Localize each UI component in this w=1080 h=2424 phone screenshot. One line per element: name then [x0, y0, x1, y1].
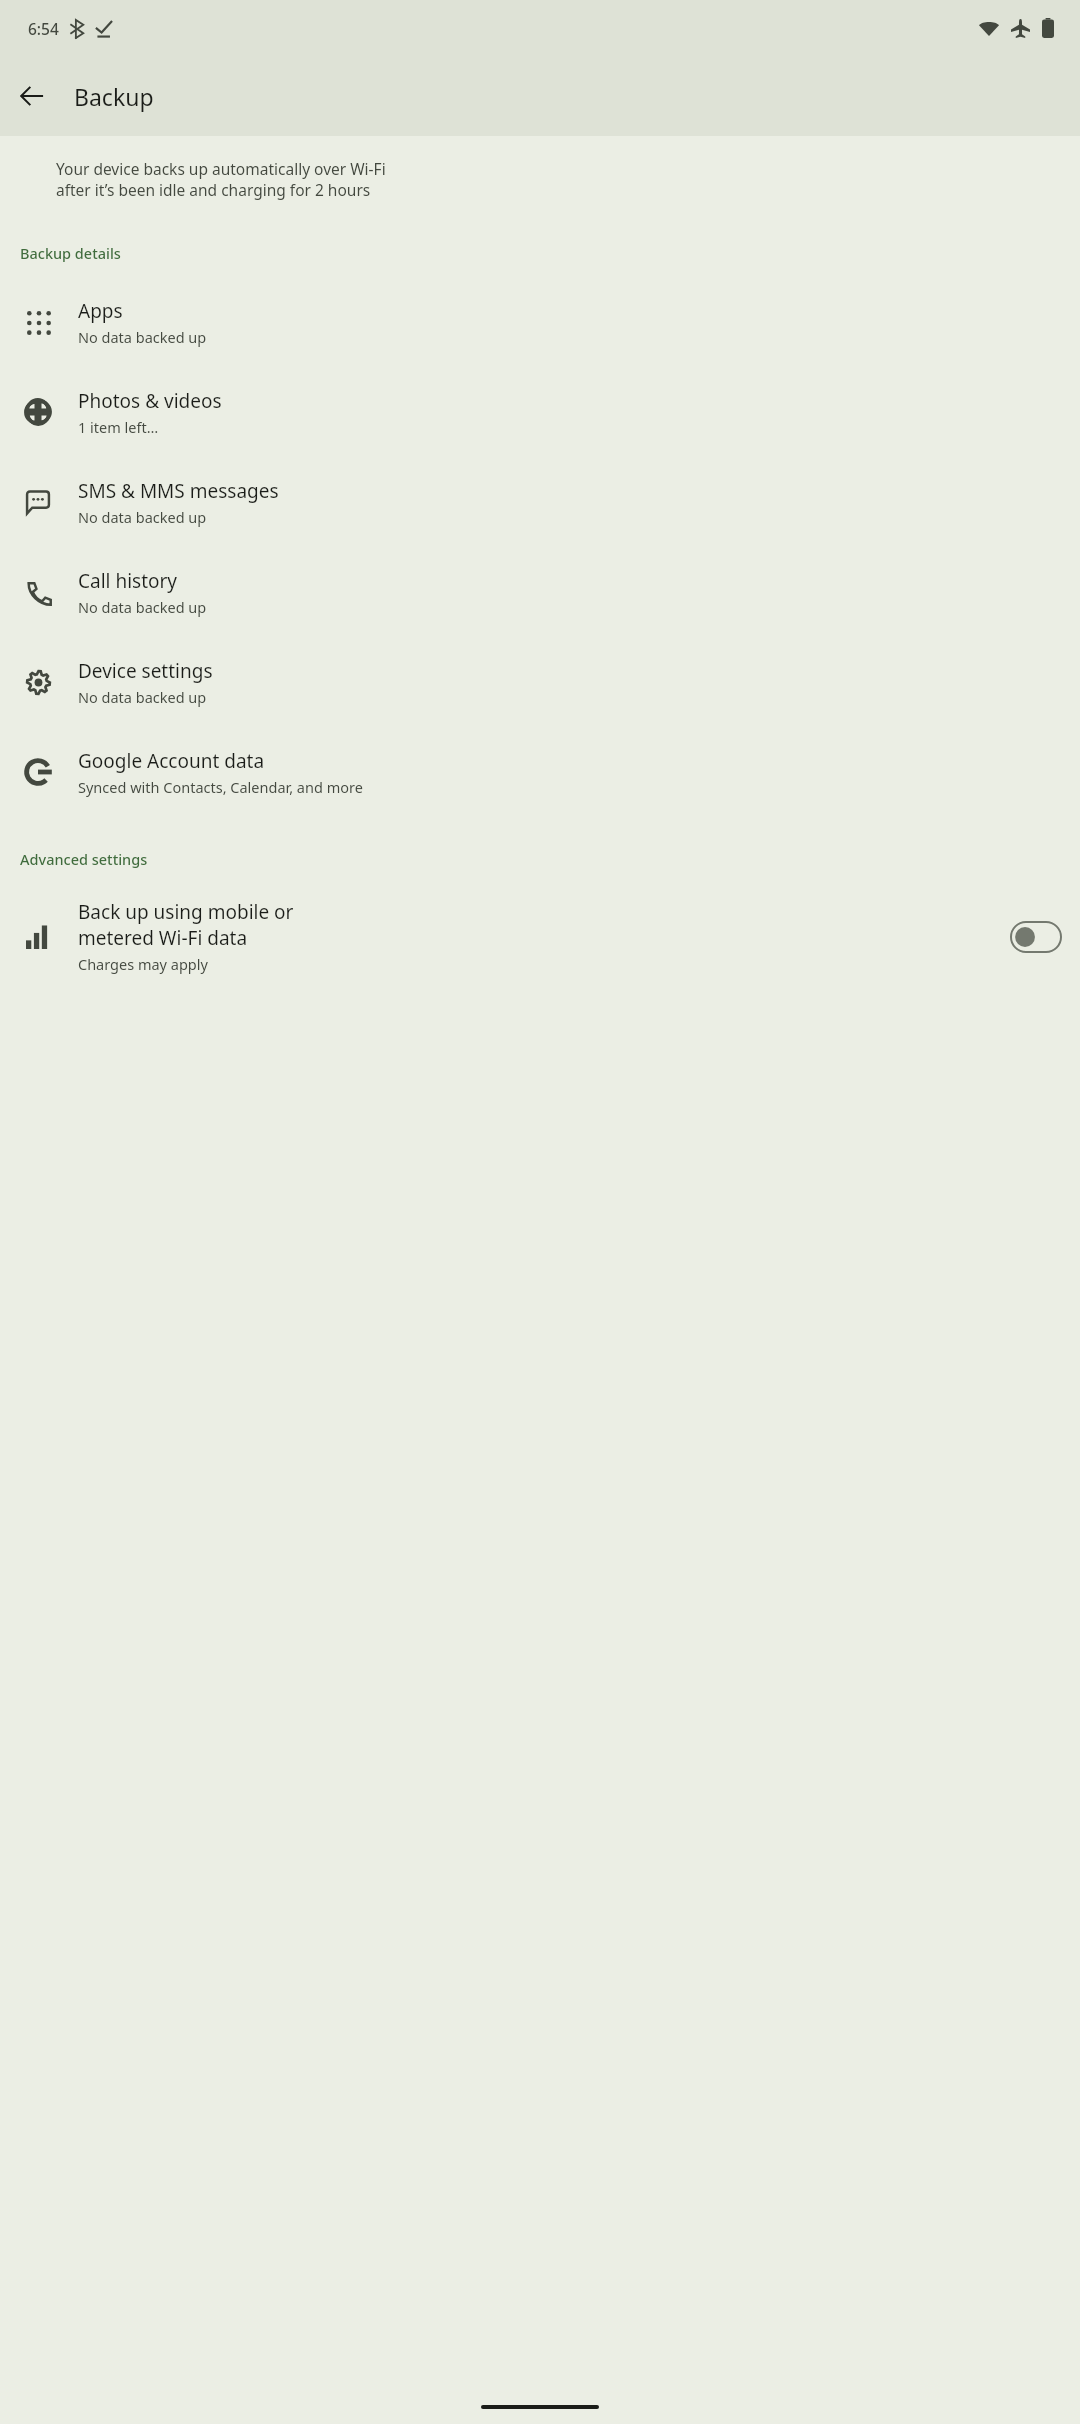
button[interactable]: Google Account data	[0, 727, 1080, 817]
staticText: Google Account data	[78, 748, 265, 774]
button[interactable]: Back up using mobile or metered Wi-Fi da…	[0, 885, 1080, 988]
button[interactable]: Call history	[0, 547, 1080, 637]
staticText: Backup	[74, 81, 154, 112]
button[interactable]: SMS & MMS messages	[0, 457, 1080, 547]
staticText: No data backed up	[78, 327, 207, 347]
staticText: Synced with Contacts, Calendar, and more	[78, 777, 363, 797]
staticText: Charges may apply	[78, 954, 208, 974]
staticText: Backup details	[20, 243, 121, 263]
button[interactable]: Photos & videos	[0, 367, 1080, 457]
staticText: No data backed up	[78, 507, 207, 527]
staticText: SMS & MMS messages	[78, 478, 279, 504]
staticText: Back up using mobile or metered Wi-Fi da…	[78, 899, 294, 951]
staticText: 1 item left…	[78, 417, 159, 437]
staticText: Call history	[78, 568, 178, 594]
staticText: No data backed up	[78, 687, 207, 707]
staticText: Your device backs up automatically over …	[56, 158, 386, 201]
button[interactable]: Device settings	[0, 637, 1080, 727]
staticText: Photos & videos	[78, 388, 222, 414]
button[interactable]: Back	[8, 72, 56, 120]
button[interactable]: Apps	[0, 277, 1080, 367]
staticText: No data backed up	[78, 597, 207, 617]
staticText: Device settings	[78, 658, 213, 684]
staticText: Advanced settings	[20, 849, 148, 869]
staticText: Apps	[78, 298, 123, 324]
staticText: 6:54	[28, 18, 59, 39]
button[interactable]: Back up using mobile or metered Wi-Fi da…	[1010, 921, 1062, 953]
